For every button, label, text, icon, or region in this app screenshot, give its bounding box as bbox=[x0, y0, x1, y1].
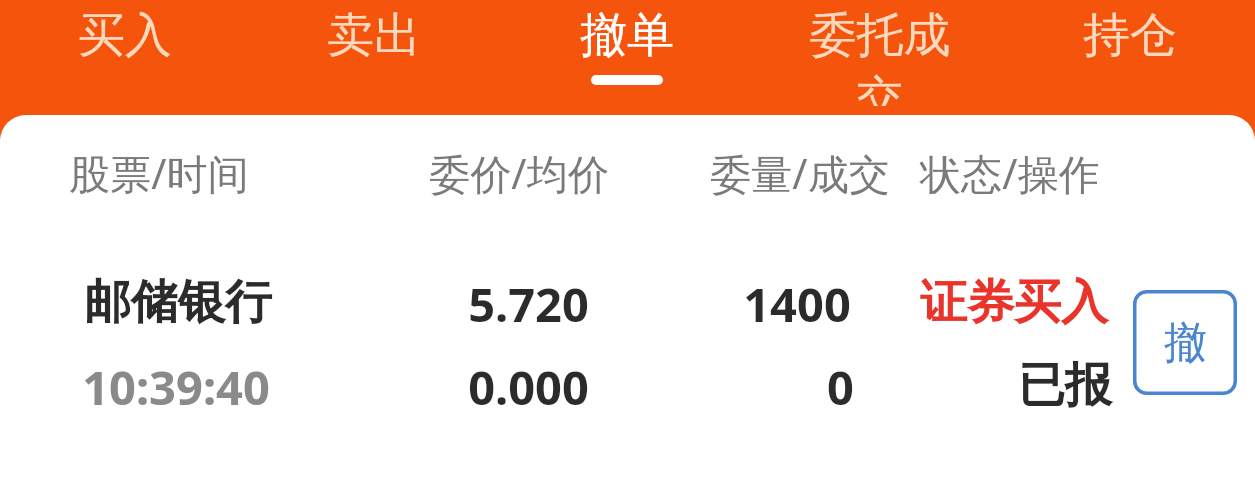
button[interactable]: 卖出 bbox=[299, 6, 449, 106]
staticText: 1400 bbox=[743, 272, 851, 332]
button[interactable]: 持仓 bbox=[1055, 6, 1205, 106]
staticText: 卖出 bbox=[327, 6, 421, 65]
staticText: 证券买入 bbox=[920, 273, 1108, 332]
staticText: 委价/均价 bbox=[429, 145, 609, 201]
staticText: 邮储银行 bbox=[84, 273, 272, 332]
staticText: 10:39:40 bbox=[82, 355, 270, 415]
button[interactable]: 撤单 bbox=[552, 6, 702, 106]
staticText: 持仓 bbox=[1083, 6, 1177, 65]
staticText: 撤单 bbox=[580, 6, 674, 65]
staticText: 买入 bbox=[78, 6, 172, 65]
button[interactable]: 买入 bbox=[50, 6, 200, 106]
button[interactable]: 委托成交 bbox=[805, 6, 955, 106]
button[interactable]: 撤单 Cancel order bbox=[1133, 290, 1237, 395]
staticText: 状态/操作 bbox=[920, 145, 1100, 201]
staticText: 0.000 bbox=[468, 355, 589, 415]
staticText: 委托成交 bbox=[805, 6, 955, 106]
staticText: 0 bbox=[827, 355, 854, 415]
staticText: 5.720 bbox=[468, 272, 589, 332]
staticText: 委量/成交 bbox=[710, 145, 890, 201]
staticText: 撤 bbox=[1164, 316, 1207, 370]
staticText: 已报 bbox=[1018, 356, 1112, 415]
staticText: 股票/时间 bbox=[69, 145, 249, 201]
